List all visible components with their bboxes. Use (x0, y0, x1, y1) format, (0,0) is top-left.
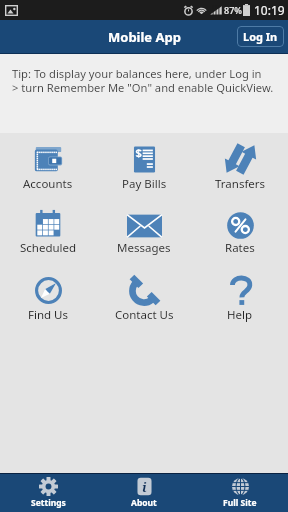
staticText: Settings (31, 497, 66, 509)
staticText: Find Us (28, 307, 69, 323)
staticText: Scheduled (20, 240, 77, 256)
button[interactable]: Rates (192, 207, 288, 256)
staticText: Messages (117, 240, 171, 256)
button[interactable]: Pay Bills (96, 143, 192, 192)
staticText: Mobile App (108, 28, 181, 46)
button[interactable]: Transfers (192, 143, 288, 192)
staticText: Pay Bills (122, 176, 167, 192)
staticText: i (142, 478, 147, 496)
button[interactable]: Settings (0, 474, 96, 512)
staticText: Accounts (23, 176, 73, 192)
staticText: Tip: To display your balances here, unde… (12, 66, 274, 95)
button[interactable]: Find Us (0, 274, 96, 323)
staticText: Contact Us (115, 307, 174, 323)
staticText: About (131, 497, 157, 509)
button[interactable]: Accounts (0, 143, 96, 192)
button[interactable]: Scheduled (0, 207, 96, 256)
staticText: Full Site (223, 497, 257, 509)
button[interactable]: Full Site (192, 474, 288, 512)
button[interactable]: Help (192, 274, 288, 323)
button[interactable]: Contact Us (96, 274, 192, 323)
staticText: Log In (243, 29, 278, 44)
button[interactable]: Log In (237, 26, 284, 47)
staticText: 10:19 (254, 2, 285, 18)
button[interactable]: Messages (96, 207, 192, 256)
staticText: 87% (224, 4, 242, 16)
staticText: Transfers (215, 176, 266, 192)
staticText: Rates (225, 240, 255, 256)
staticText: Help (227, 307, 253, 323)
button[interactable]: i (96, 474, 192, 512)
